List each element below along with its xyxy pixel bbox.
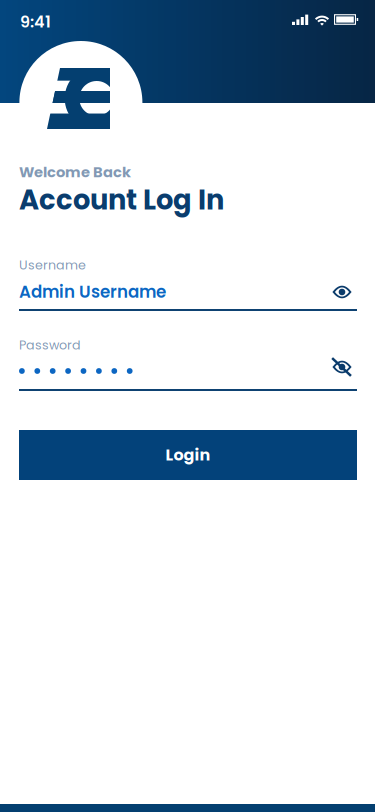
button[interactable]: Hide password (320, 347, 364, 387)
staticText: Admin Username (19, 280, 166, 304)
staticText: Login (165, 444, 210, 466)
staticText: Welcome Back (19, 162, 131, 182)
button[interactable]: Login (19, 430, 357, 480)
staticText: Account Log In (19, 181, 224, 219)
button[interactable]: Show username (320, 272, 364, 312)
staticText: 9:41 (20, 11, 51, 33)
staticText: Password (19, 336, 81, 354)
staticText: Username (19, 256, 86, 274)
